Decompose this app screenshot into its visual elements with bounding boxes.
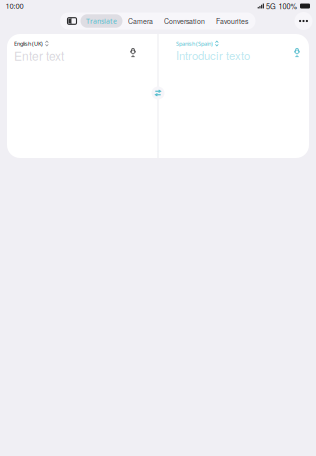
staticText: Spanish (Spain) [176, 40, 213, 47]
staticText: 100% [278, 1, 297, 11]
staticText: Favourites [216, 16, 248, 26]
staticText: Introducir texto [176, 47, 250, 63]
button[interactable]: Camera [122, 14, 158, 28]
button[interactable]: Spanish (Spain) [176, 40, 303, 47]
button[interactable]: Favourites [210, 14, 253, 28]
staticText: 10:00 [5, 1, 23, 11]
staticText: Camera [128, 16, 153, 26]
staticText: 5G [266, 1, 276, 11]
button[interactable]: English (UK) [14, 40, 139, 47]
staticText: Conversation [164, 16, 205, 26]
button[interactable]: Conversation [158, 14, 210, 28]
staticText: Translate [86, 16, 117, 26]
button[interactable]: More [294, 11, 313, 30]
staticText: English (UK) [14, 40, 43, 47]
button[interactable]: Dictate [127, 47, 139, 59]
button[interactable]: Swap languages [150, 85, 166, 101]
button[interactable]: Show sidebar [63, 14, 80, 28]
staticText: Enter text [14, 47, 64, 64]
button[interactable]: Translate [80, 14, 122, 28]
button[interactable]: Dictate [291, 47, 303, 59]
